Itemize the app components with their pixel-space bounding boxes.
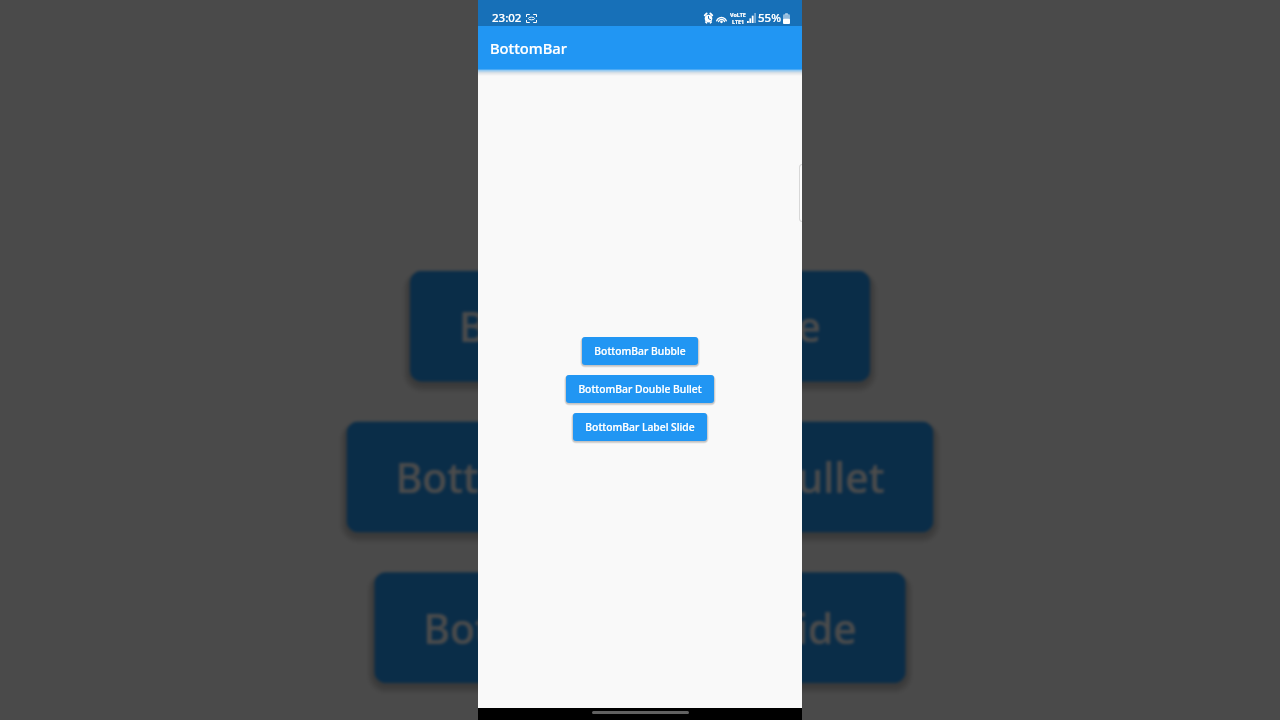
staticText: BottomBar Bubble [458, 299, 822, 354]
staticText: BottomBar Bubble [594, 344, 686, 358]
button[interactable]: Edge panel handle [800, 165, 802, 221]
button[interactable]: BottomBar Bubble [582, 337, 698, 365]
button[interactable]: BottomBar Double Bullet [566, 375, 714, 403]
staticText: VoLTE [730, 11, 746, 18]
button[interactable]: BottomBar Label Slide [573, 413, 707, 441]
staticText: 23:02 [492, 10, 522, 26]
staticText: BottomBar Label Slide [585, 420, 695, 434]
staticText: BottomBar Double Bullet [578, 382, 702, 396]
staticText: BottomBar [490, 38, 567, 58]
button[interactable]: BottomBar Double Bullet [347, 421, 933, 532]
staticText: 55% [758, 10, 781, 26]
staticText: BottomBar Label Slide [422, 600, 858, 655]
button[interactable]: BottomBar Bubble [410, 271, 870, 382]
staticText: LTE1 [732, 18, 745, 25]
button[interactable]: BottomBar Label Slide [374, 572, 906, 683]
staticText: BottomBar Double Bullet [394, 449, 886, 505]
